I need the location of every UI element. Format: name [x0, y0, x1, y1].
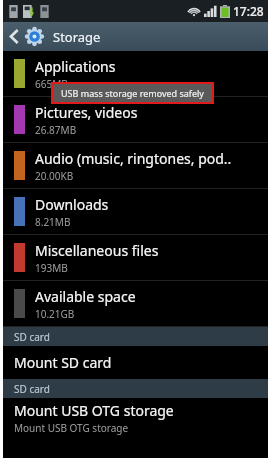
staticText: Available space [35, 287, 136, 306]
button[interactable]: Miscellaneous files [3, 235, 268, 280]
button[interactable]: Downloads [3, 189, 268, 234]
button[interactable]: Audio (music, ringtones, pod.. [3, 143, 268, 188]
staticText: 8.21MB [35, 215, 71, 229]
staticText: 17:28 [233, 3, 264, 19]
button[interactable]: Mount USB OTG storage [3, 398, 268, 438]
staticText: Mount USB OTG storage [14, 401, 174, 420]
button[interactable]: Pictures, videos [3, 97, 268, 142]
staticText: Miscellaneous files [35, 241, 159, 260]
staticText: 10.21GB [35, 307, 75, 321]
button[interactable]: Mount SD card [3, 346, 268, 379]
staticText: Mount USB OTG storage [14, 421, 129, 435]
button[interactable]: Available space [3, 281, 268, 326]
staticText: 20.00KB [35, 169, 74, 183]
staticText: Pictures, videos [35, 103, 138, 122]
staticText: Storage [53, 28, 101, 46]
staticText: 193MB [35, 261, 68, 275]
staticText: USB mass storage removed safely [61, 87, 204, 99]
button[interactable]: Applications [3, 51, 268, 96]
staticText: 665MB [35, 77, 68, 91]
staticText: Downloads [35, 195, 109, 214]
staticText: 26.87MB [35, 123, 77, 137]
button[interactable]: Back [3, 22, 25, 51]
staticText: Mount SD card [14, 353, 112, 372]
staticText: SD card [14, 330, 50, 344]
staticText: Audio (music, ringtones, pod.. [35, 149, 232, 168]
staticText: SD card [14, 382, 50, 396]
staticText: Applications [35, 57, 116, 76]
